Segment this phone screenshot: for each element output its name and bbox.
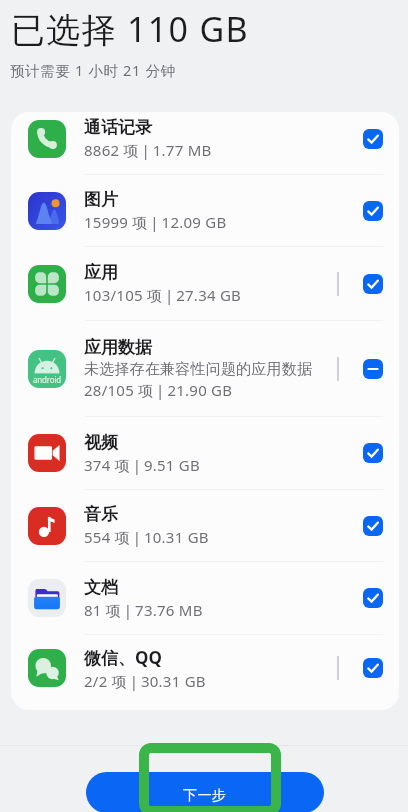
staticText: 15999 项 | 12.09 GB: [84, 212, 227, 232]
button[interactable]: 音乐: [11, 490, 399, 561]
button[interactable]: Selected: [363, 129, 383, 149]
staticText: 文档: [84, 577, 118, 598]
staticText: 28/105 项 | 21.90 GB: [84, 380, 233, 400]
staticText: 8862 项 | 1.77 MB: [84, 140, 212, 160]
button[interactable]: 下一步: [86, 772, 324, 812]
button[interactable]: 应用: [11, 247, 399, 320]
button[interactable]: Selected: [363, 516, 383, 536]
staticText: 已选择 110 GB: [11, 6, 249, 52]
staticText: 554 项 | 10.31 GB: [84, 527, 209, 547]
staticText: 2/2 项 | 30.31 GB: [84, 671, 206, 691]
button[interactable]: Selected: [363, 274, 383, 294]
staticText: 103/105 项 | 27.34 GB: [84, 285, 242, 305]
staticText: 未选择存在兼容性问题的应用数据: [84, 360, 312, 379]
staticText: 应用: [84, 262, 118, 283]
staticText: android: [28, 374, 66, 385]
staticText: 81 项 | 73.76 MB: [84, 600, 203, 620]
staticText: 音乐: [84, 504, 118, 525]
staticText: 下一步: [183, 787, 227, 805]
button[interactable]: 微信、QQ: [11, 635, 399, 701]
button[interactable]: Partially selected: [363, 359, 383, 379]
button[interactable]: 通话记录: [11, 112, 399, 174]
staticText: 微信、QQ: [84, 646, 162, 669]
staticText: 预计需要 1 小时 21 分钟: [10, 60, 176, 80]
button[interactable]: 图片: [11, 175, 399, 246]
staticText: 视频: [84, 432, 118, 453]
staticText: 应用数据: [84, 337, 152, 358]
button[interactable]: Selected: [363, 443, 383, 463]
staticText: 图片: [84, 189, 118, 210]
button[interactable]: Selected: [363, 588, 383, 608]
staticText: 通话记录: [84, 117, 152, 138]
button[interactable]: android: [11, 321, 399, 416]
button[interactable]: 视频: [11, 417, 399, 489]
button[interactable]: Selected: [363, 201, 383, 221]
button[interactable]: Selected: [363, 658, 383, 678]
button[interactable]: 文档: [11, 562, 399, 634]
staticText: 374 项 | 9.51 GB: [84, 455, 200, 475]
